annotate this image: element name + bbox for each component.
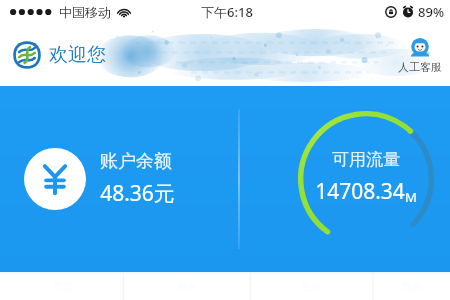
staticText: 下午6:18 <box>201 3 253 21</box>
button[interactable]: 欢迎您 <box>12 40 106 70</box>
button[interactable]: 账户余额 <box>24 148 175 210</box>
button[interactable]: 服务 <box>125 272 249 300</box>
staticText: 48.36元 <box>100 179 175 208</box>
button[interactable]: 人工客服 <box>398 37 442 74</box>
staticText: 可用流量 <box>332 149 400 170</box>
button[interactable]: 生活 <box>249 272 373 300</box>
staticText: 中国移动 <box>59 4 111 20</box>
staticText: 欢迎您 <box>49 43 106 67</box>
staticText: 89% <box>418 3 444 21</box>
button[interactable]: 我的 <box>373 272 450 300</box>
staticText: 账户余额 <box>100 150 172 173</box>
staticText: 14708.34 <box>315 177 405 206</box>
staticText: M <box>405 188 417 206</box>
button[interactable]: 可用流量 <box>296 109 436 249</box>
button[interactable]: 首页 <box>0 272 125 300</box>
staticText: 人工客服 <box>398 60 442 74</box>
